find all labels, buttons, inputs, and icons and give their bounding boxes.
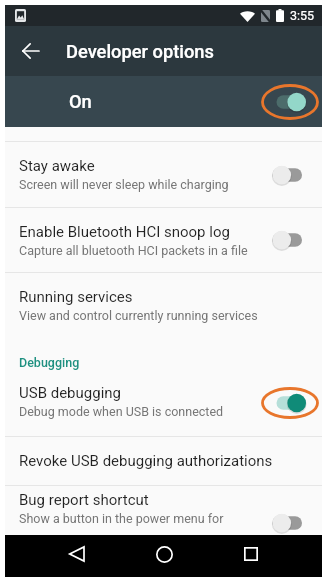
staticText: View and control currently running servi…	[19, 308, 258, 323]
button[interactable]: Revoke USB debugging authorizations	[5, 437, 322, 485]
staticText: USB debugging	[19, 384, 122, 402]
button[interactable]: Back	[53, 533, 99, 575]
button[interactable]: USB debugging	[5, 367, 322, 436]
staticText: Debugging	[19, 355, 80, 370]
button[interactable]: Home	[141, 533, 187, 575]
staticText: Capture all bluetooth HCI packets in a f…	[19, 243, 248, 258]
staticText: Debug mode when USB is connected	[19, 404, 224, 419]
staticText: 3:55	[290, 8, 315, 23]
staticText: On	[69, 91, 92, 112]
button[interactable]: Running services	[5, 273, 322, 337]
button[interactable]: Enable Bluetooth HCI snoop log	[5, 208, 322, 272]
staticText: Revoke USB debugging authorizations	[19, 452, 273, 470]
button[interactable]: Bug report shortcut	[5, 486, 322, 531]
button[interactable]: Navigate up	[14, 35, 46, 67]
staticText: Developer options	[66, 41, 214, 62]
button[interactable]: On	[5, 76, 322, 127]
staticText: Stay awake	[19, 157, 95, 175]
staticText: Running services	[19, 288, 133, 306]
button[interactable]: Stay awake	[5, 142, 322, 207]
staticText: Enable Bluetooth HCI snoop log	[19, 223, 230, 241]
staticText: Screen will never sleep while charging	[19, 177, 229, 192]
button[interactable]: Recent apps	[228, 533, 274, 575]
staticText: Bug report shortcut	[19, 491, 149, 509]
staticText: Show a button in the power menu for	[19, 511, 224, 526]
